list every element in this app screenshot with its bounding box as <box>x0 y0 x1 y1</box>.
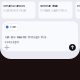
button[interactable]: Send <box>69 44 76 51</box>
staticText: illustration of my pet <box>3 9 26 12</box>
staticText: to Japan in the spring <box>77 9 80 12</box>
button[interactable]: Plan a trip <box>75 1 80 18</box>
staticText: Create a cartoon <box>3 4 25 8</box>
staticText: Can you walk me through this <box>5 36 46 39</box>
button[interactable]: Create a cartoon <box>1 1 35 18</box>
button[interactable]: Add attachment <box>4 45 9 50</box>
staticText: to request a quote from a <box>40 9 66 12</box>
staticText: concept? <box>5 41 19 44</box>
staticText: ✕ <box>17 26 19 28</box>
button[interactable]: Write an email <box>38 1 72 18</box>
button[interactable]: Study <box>4 24 20 30</box>
staticText: Study <box>10 26 16 28</box>
staticText: Plan a trip <box>77 4 80 8</box>
staticText: Write an email <box>40 4 58 8</box>
